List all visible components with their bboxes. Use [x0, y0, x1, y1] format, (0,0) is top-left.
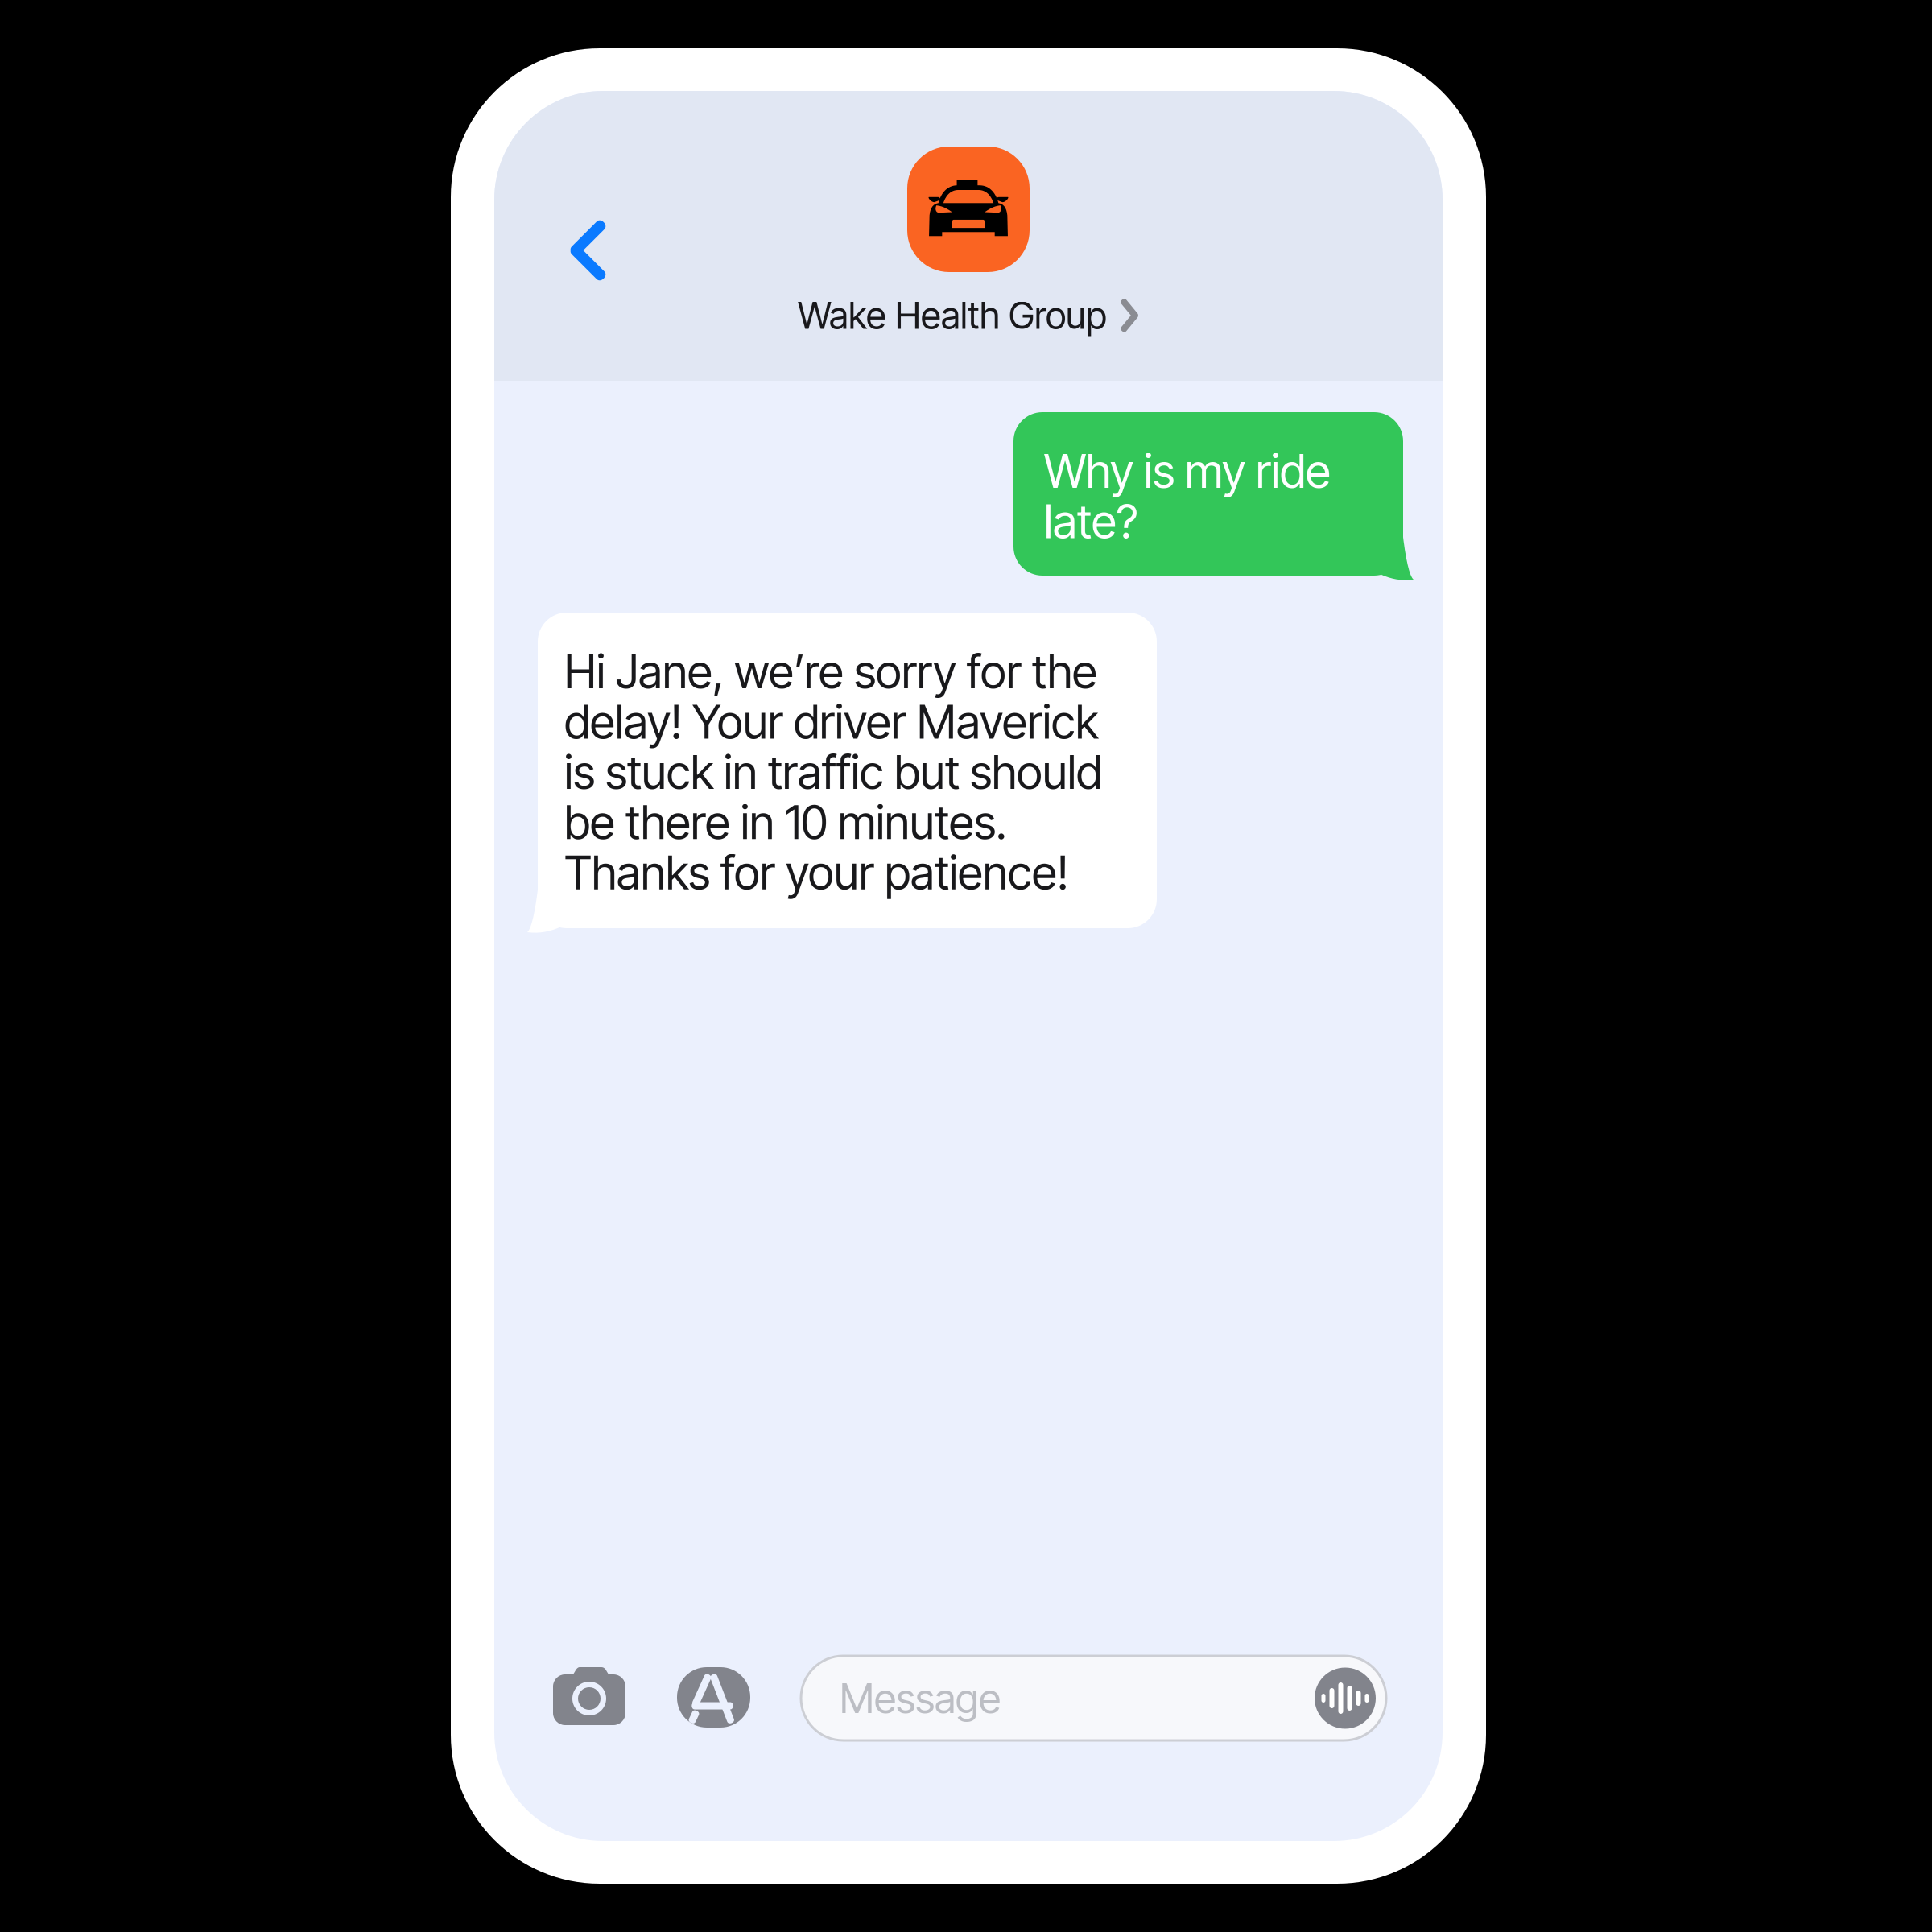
button[interactable]: Camera	[553, 1667, 625, 1725]
button[interactable]: Back	[554, 205, 620, 295]
staticText: Why is my ride late?	[1044, 446, 1331, 547]
button[interactable]: Message	[801, 1656, 1386, 1740]
button[interactable]: Apps	[677, 1667, 750, 1728]
staticText: Wake Health Group	[798, 293, 1107, 338]
staticText: Message	[840, 1673, 1001, 1723]
button[interactable]: Wake Health Group	[494, 147, 1443, 338]
staticText: Hi Jane, we’re sorry for the delay! Your…	[564, 646, 1102, 898]
